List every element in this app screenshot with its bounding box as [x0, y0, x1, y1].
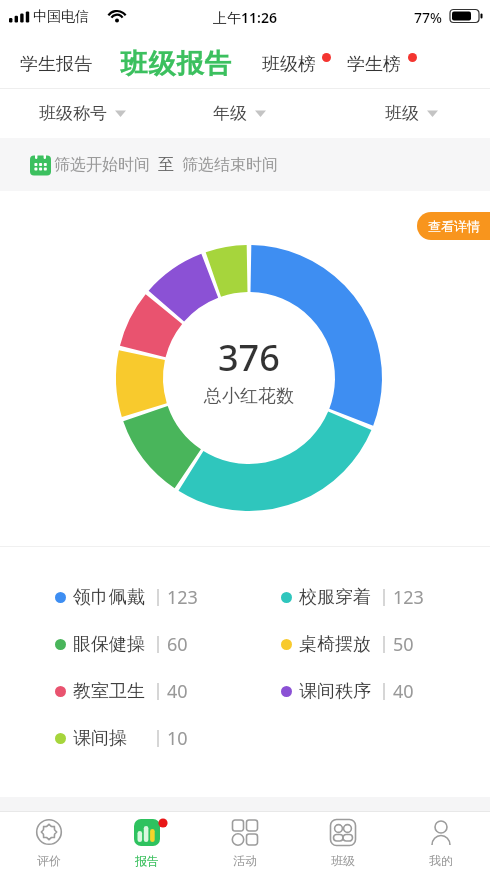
staticText: 桌椅摆放 — [299, 633, 371, 656]
button[interactable]: 查看详情 — [417, 212, 490, 240]
button[interactable]: 评价 — [0, 811, 98, 876]
button[interactable]: 领巾佩戴 — [55, 584, 227, 610]
staticText: 123 — [167, 585, 198, 610]
button[interactable]: 班级榜 — [262, 37, 316, 91]
staticText: 活动 — [233, 853, 257, 868]
staticText: 眼保健操 — [73, 633, 145, 656]
button[interactable]: 教室卫生 — [55, 678, 227, 704]
staticText: 课间操 — [73, 727, 127, 750]
staticText: 班级 — [385, 103, 419, 124]
staticText: 筛选结束时间 — [182, 155, 278, 175]
staticText: 年级 — [213, 103, 247, 124]
staticText: 评价 — [37, 853, 61, 868]
staticText: 校服穿着 — [299, 586, 371, 609]
button[interactable]: 班级 — [385, 103, 438, 124]
staticText: 上午11:26 — [213, 8, 277, 27]
button[interactable]: 报告 — [98, 811, 196, 876]
staticText: 至 — [158, 155, 174, 175]
staticText: 学生榜 — [347, 53, 401, 76]
staticText: 40 — [167, 679, 188, 704]
staticText: 班级称号 — [39, 103, 107, 124]
staticText: 中国电信 — [33, 8, 89, 26]
button[interactable]: 活动 — [196, 811, 294, 876]
staticText: 班级榜 — [262, 53, 316, 76]
button[interactable]: 课间秩序 — [281, 678, 453, 704]
button[interactable]: 班级 — [294, 811, 392, 876]
button[interactable]: 筛选开始时间 — [0, 138, 490, 191]
button[interactable]: 年级 — [213, 103, 266, 124]
button[interactable]: 我的 — [392, 811, 490, 876]
staticText: 50 — [393, 632, 414, 657]
staticText: 77% — [414, 8, 442, 27]
staticText: 教室卫生 — [73, 680, 145, 703]
button[interactable]: 班级称号 — [39, 103, 126, 124]
staticText: 123 — [393, 585, 424, 610]
staticText: 课间秩序 — [299, 680, 371, 703]
button[interactable]: 学生报告 — [20, 37, 92, 91]
staticText: 376 — [218, 333, 280, 382]
staticText: 10 — [167, 726, 188, 751]
button[interactable]: 班级报告 — [120, 37, 232, 91]
staticText: 60 — [167, 632, 188, 657]
staticText: 学生报告 — [20, 53, 92, 76]
staticText: 筛选开始时间 — [54, 155, 150, 175]
button[interactable]: 桌椅摆放 — [281, 631, 453, 657]
staticText: 报告 — [135, 853, 159, 868]
button[interactable]: 校服穿着 — [281, 584, 453, 610]
staticText: 班级 — [331, 853, 355, 868]
staticText: 40 — [393, 679, 414, 704]
staticText: 我的 — [429, 853, 453, 868]
button[interactable]: 学生榜 — [347, 37, 401, 91]
button[interactable]: 眼保健操 — [55, 631, 227, 657]
staticText: 总小红花数 — [204, 385, 294, 408]
staticText: 班级报告 — [120, 47, 232, 81]
button[interactable]: 课间操 — [55, 725, 227, 751]
staticText: 领巾佩戴 — [73, 586, 145, 609]
staticText: 查看详情 — [428, 218, 480, 234]
